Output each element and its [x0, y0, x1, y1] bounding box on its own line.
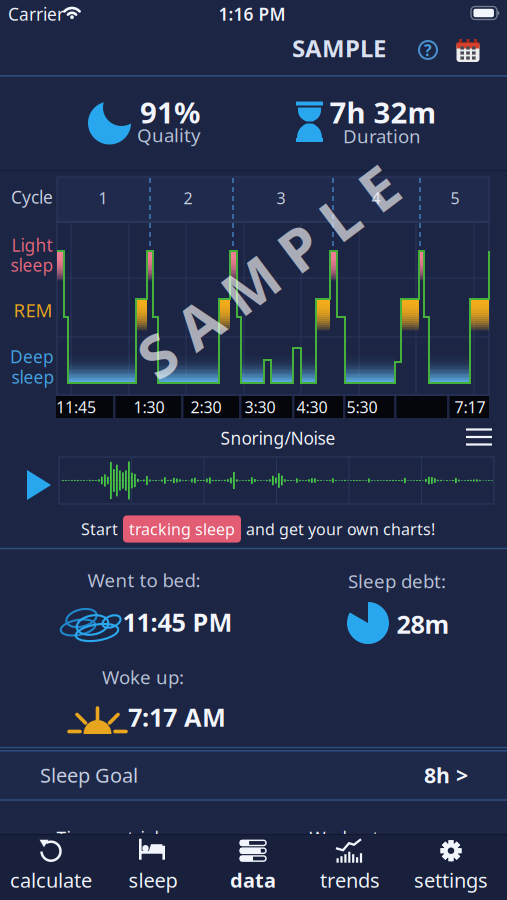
button[interactable]: Help [414, 36, 442, 64]
staticText: 1 [98, 187, 107, 209]
staticText: 5 [450, 187, 459, 209]
staticText: 7:17 AM [128, 700, 226, 734]
button[interactable]: settings [403, 836, 499, 896]
staticText: Sleep debt: [348, 569, 446, 593]
staticText: 1:16 PM [218, 2, 285, 25]
staticText: REM [13, 298, 52, 322]
button[interactable]: tracking sleep [123, 515, 241, 543]
button[interactable]: data [205, 836, 301, 896]
staticText: Woke up: [102, 665, 184, 689]
staticText: Light [11, 233, 52, 256]
staticText: SAMPLE [113, 232, 423, 310]
staticText: 8h > [424, 761, 468, 789]
staticText: 3 [276, 187, 285, 209]
staticText: 7h 32m [329, 92, 436, 131]
staticText: settings [414, 867, 488, 893]
staticText: Sleep Goal [40, 762, 138, 788]
button[interactable]: sleep [105, 836, 201, 896]
button[interactable]: trends [302, 836, 398, 896]
staticText: 4:30 [296, 396, 327, 418]
staticText: trends [320, 867, 380, 893]
staticText: 7:17 [454, 396, 485, 418]
staticText: Cycle [11, 185, 53, 208]
staticText: 4 [371, 187, 380, 209]
button[interactable]: Play [27, 470, 51, 500]
staticText: Duration [343, 124, 421, 148]
staticText: SAMPLE [292, 32, 386, 64]
staticText: 2:30 [190, 396, 221, 418]
staticText: 3:30 [244, 396, 275, 418]
staticText: 1:30 [133, 396, 164, 418]
staticText: Time on trial: [56, 826, 163, 849]
staticText: sleep [10, 253, 53, 276]
staticText: 2 [183, 187, 192, 209]
staticText: sleep [128, 867, 177, 893]
staticText: Quality [137, 123, 201, 147]
staticText: tracking sleep [129, 518, 235, 540]
staticText: 11:45 PM [122, 605, 232, 639]
staticText: Start [81, 518, 118, 540]
button[interactable]: Calendar [454, 36, 482, 64]
staticText: data [230, 867, 276, 893]
staticText: Went to bed: [87, 568, 200, 592]
button[interactable]: calculate [3, 836, 99, 896]
staticText: 5:30 [346, 396, 377, 418]
staticText: Workouts [309, 826, 386, 849]
staticText: Deep [10, 345, 54, 368]
staticText: Snoring/Noise [220, 426, 335, 449]
staticText: and get your own charts! [246, 518, 435, 540]
staticText: ? [424, 39, 432, 61]
button[interactable]: Menu [465, 428, 493, 446]
button[interactable]: Sleep Goal [0, 750, 507, 800]
staticText: sleep [11, 365, 54, 388]
staticText: calculate [10, 867, 92, 893]
staticText: 91% [140, 92, 200, 131]
staticText: Carrier [8, 2, 64, 25]
staticText: 11:45 [56, 396, 96, 418]
staticText: 28m [396, 607, 449, 641]
